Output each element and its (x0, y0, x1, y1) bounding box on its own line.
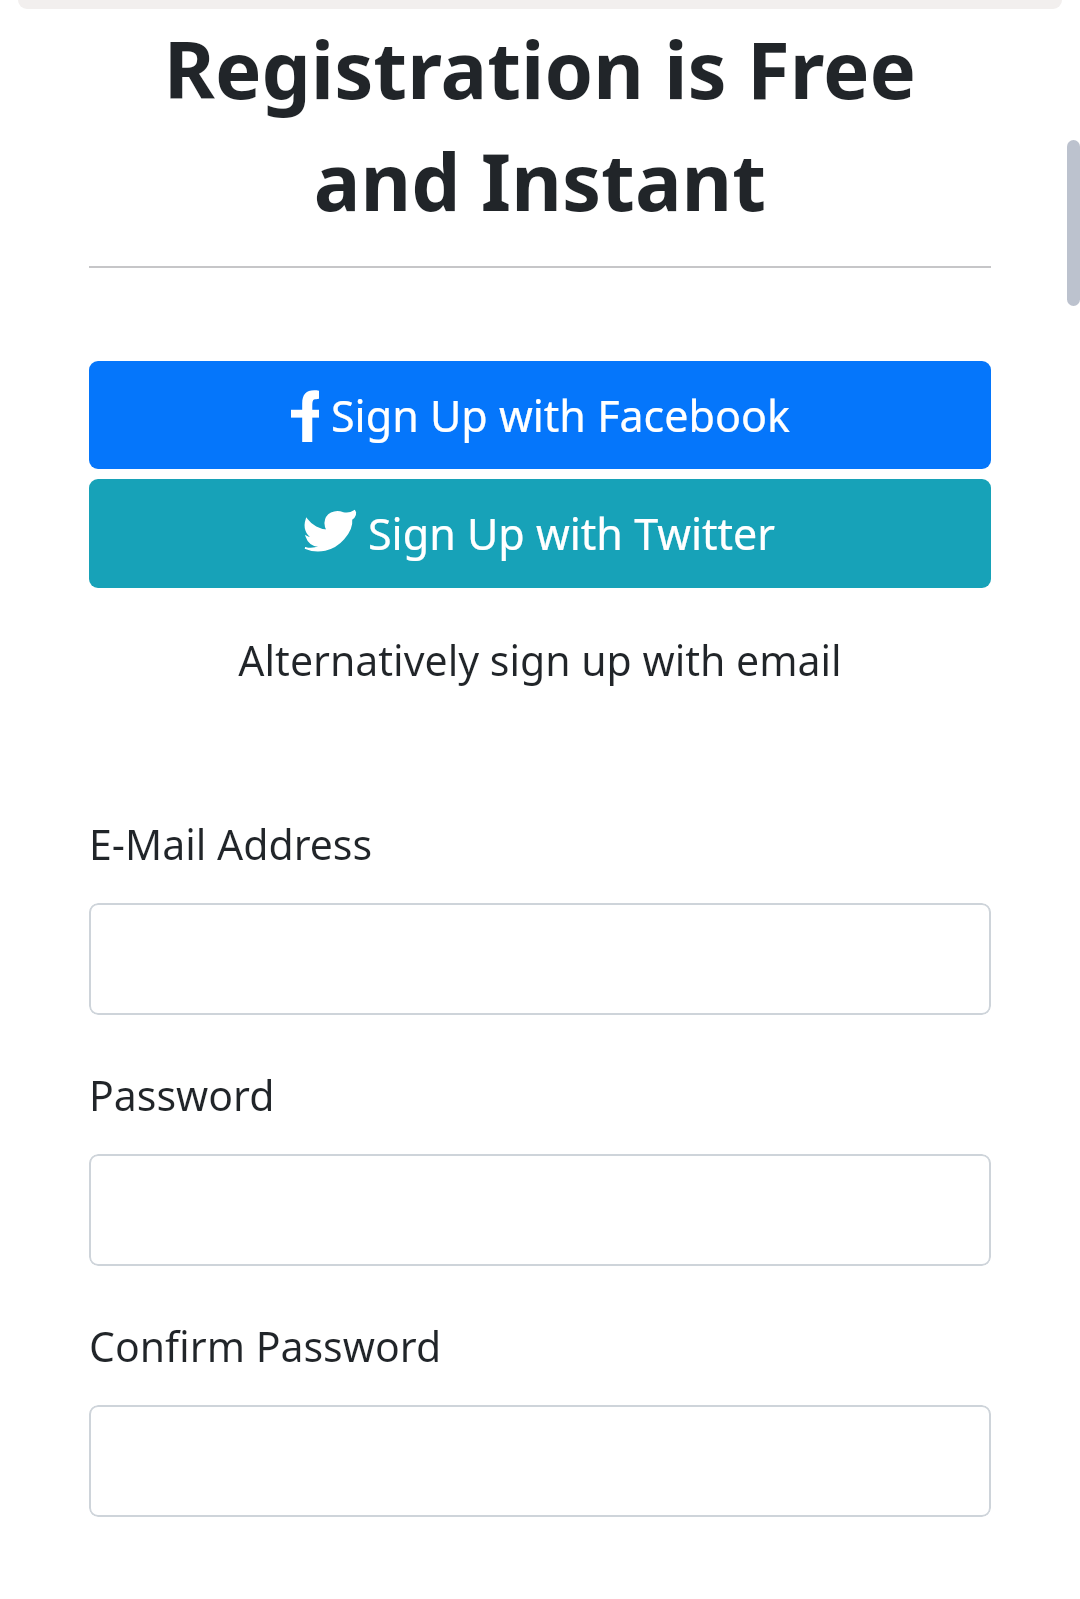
staticText: Registration is Free and Instant (89, 16, 991, 234)
button[interactable] (89, 1154, 991, 1266)
other: Twitter (304, 511, 356, 557)
button[interactable]: Facebook (89, 361, 991, 469)
button[interactable]: Twitter (89, 479, 991, 588)
staticText: Alternatively sign up with email (0, 632, 1080, 688)
staticText: Password (89, 1067, 1080, 1123)
staticText: E-Mail Address (89, 816, 1080, 872)
staticText: Sign Up with Twitter (368, 504, 776, 563)
button[interactable] (89, 903, 991, 1015)
other: Facebook (291, 390, 319, 442)
staticText: Confirm Password (89, 1318, 1080, 1374)
button[interactable] (89, 1405, 991, 1517)
staticText: Sign Up with Facebook (331, 386, 790, 445)
